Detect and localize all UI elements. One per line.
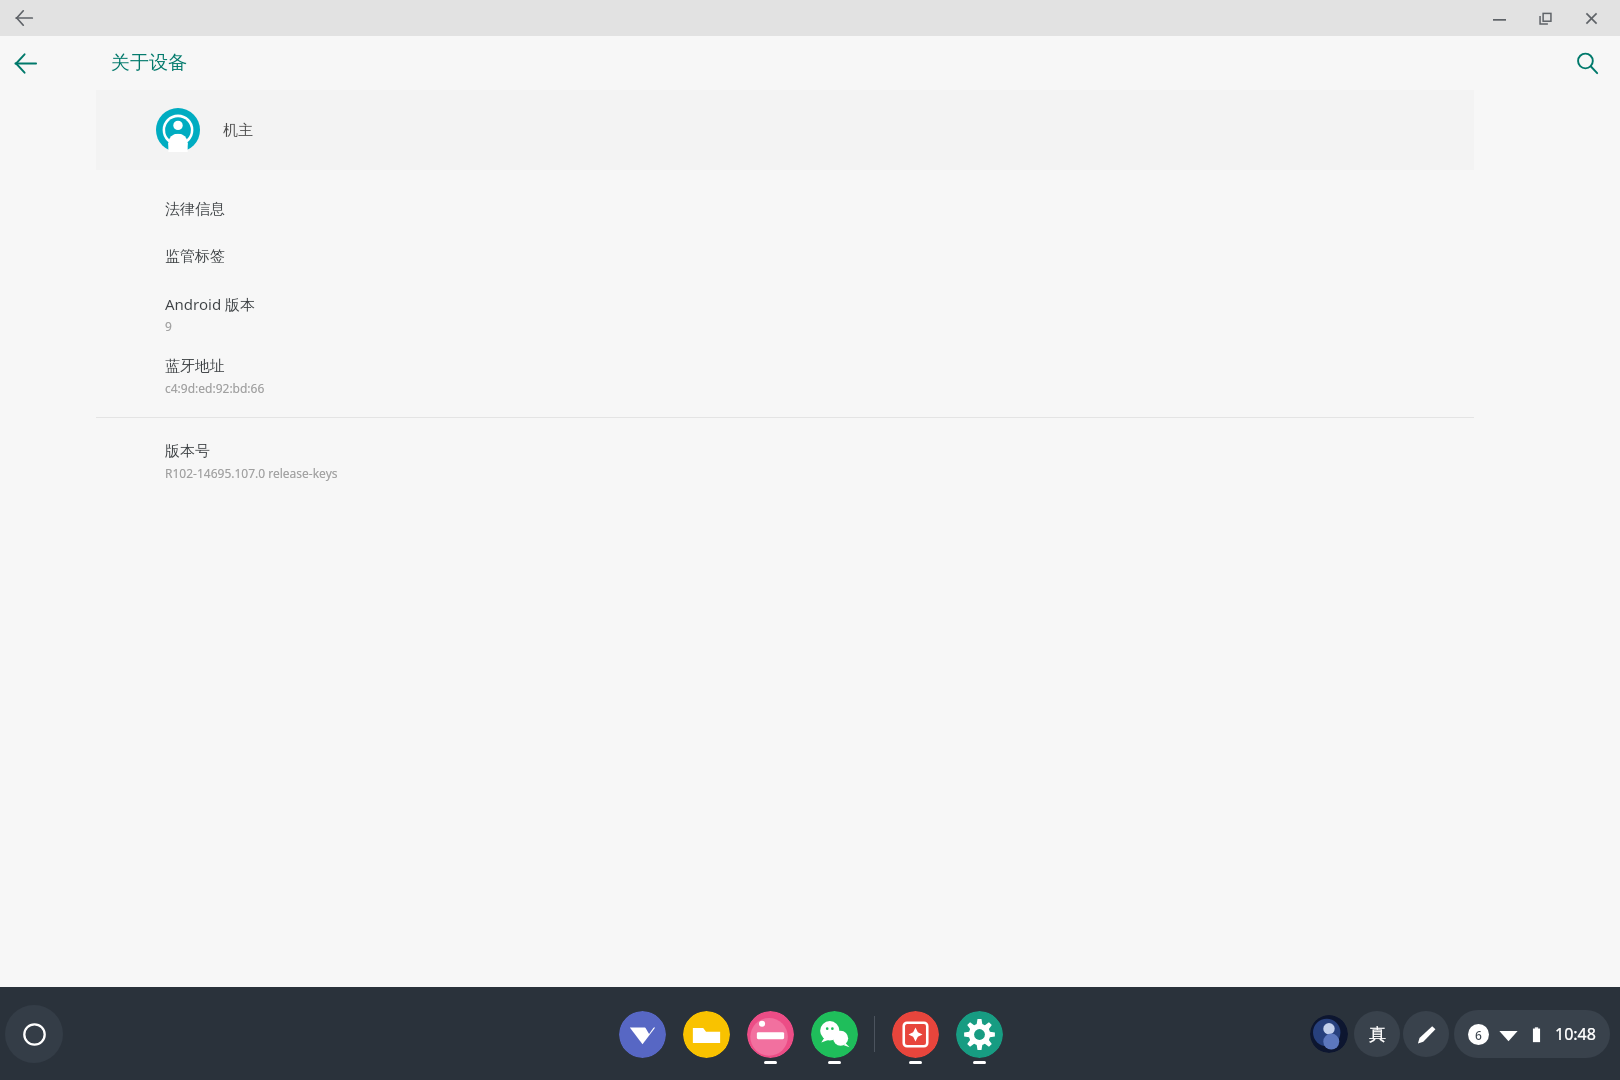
button[interactable]: Files: [674, 1002, 738, 1066]
button[interactable]: Status: [1454, 1010, 1610, 1058]
button[interactable]: 法律信息: [0, 186, 1620, 233]
button[interactable]: Close: [1568, 0, 1614, 36]
button[interactable]: WeChat: [802, 1002, 866, 1066]
staticText: 真: [1369, 1024, 1386, 1045]
staticText: Android 版本: [165, 294, 256, 314]
staticText: 版本号: [165, 442, 210, 461]
button[interactable]: Restore: [1522, 0, 1568, 36]
staticText: 关于设备: [111, 51, 187, 75]
button[interactable]: Search: [1566, 42, 1608, 84]
button[interactable]: Account: [1307, 1012, 1351, 1056]
staticText: 9: [165, 318, 172, 334]
button[interactable]: 版本号: [0, 428, 1620, 491]
staticText: c4:9d:ed:92:bd:66: [165, 380, 265, 396]
button[interactable]: Bilibili: [738, 1002, 802, 1066]
staticText: 蓝牙地址: [165, 357, 225, 376]
button[interactable]: Video app: [610, 1002, 674, 1066]
button[interactable]: Stylus tools: [1403, 1011, 1449, 1057]
staticText: R102-14695.107.0 release-keys: [165, 465, 338, 481]
button[interactable]: Minimize: [1476, 0, 1522, 36]
staticText: 机主: [223, 121, 253, 140]
button[interactable]: Settings: [947, 1002, 1011, 1066]
staticText: 10:48: [1555, 1023, 1596, 1045]
staticText: 监管标签: [165, 247, 225, 266]
button[interactable]: 机主: [96, 90, 1474, 170]
staticText: 6: [1475, 1027, 1482, 1043]
button[interactable]: 真: [1354, 1011, 1400, 1057]
button[interactable]: Photo editor: [883, 1002, 947, 1066]
button[interactable]: 监管标签: [0, 233, 1620, 280]
staticText: 法律信息: [165, 200, 225, 219]
button[interactable]: 蓝牙地址: [0, 343, 1620, 406]
button[interactable]: Android 版本: [0, 280, 1620, 343]
button[interactable]: Navigate up: [5, 43, 45, 83]
button[interactable]: Back: [5, 0, 43, 36]
button[interactable]: Launcher: [5, 1005, 63, 1063]
